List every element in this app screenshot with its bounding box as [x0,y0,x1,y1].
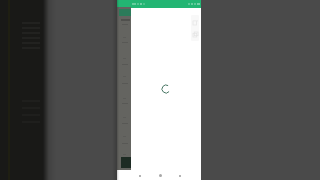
button[interactable]: Back [135,171,144,180]
button[interactable]: Scan document [191,18,199,26]
button[interactable]: Copy [191,30,199,38]
button[interactable]: Recent apps [175,171,184,180]
button[interactable]: Home [156,171,165,180]
